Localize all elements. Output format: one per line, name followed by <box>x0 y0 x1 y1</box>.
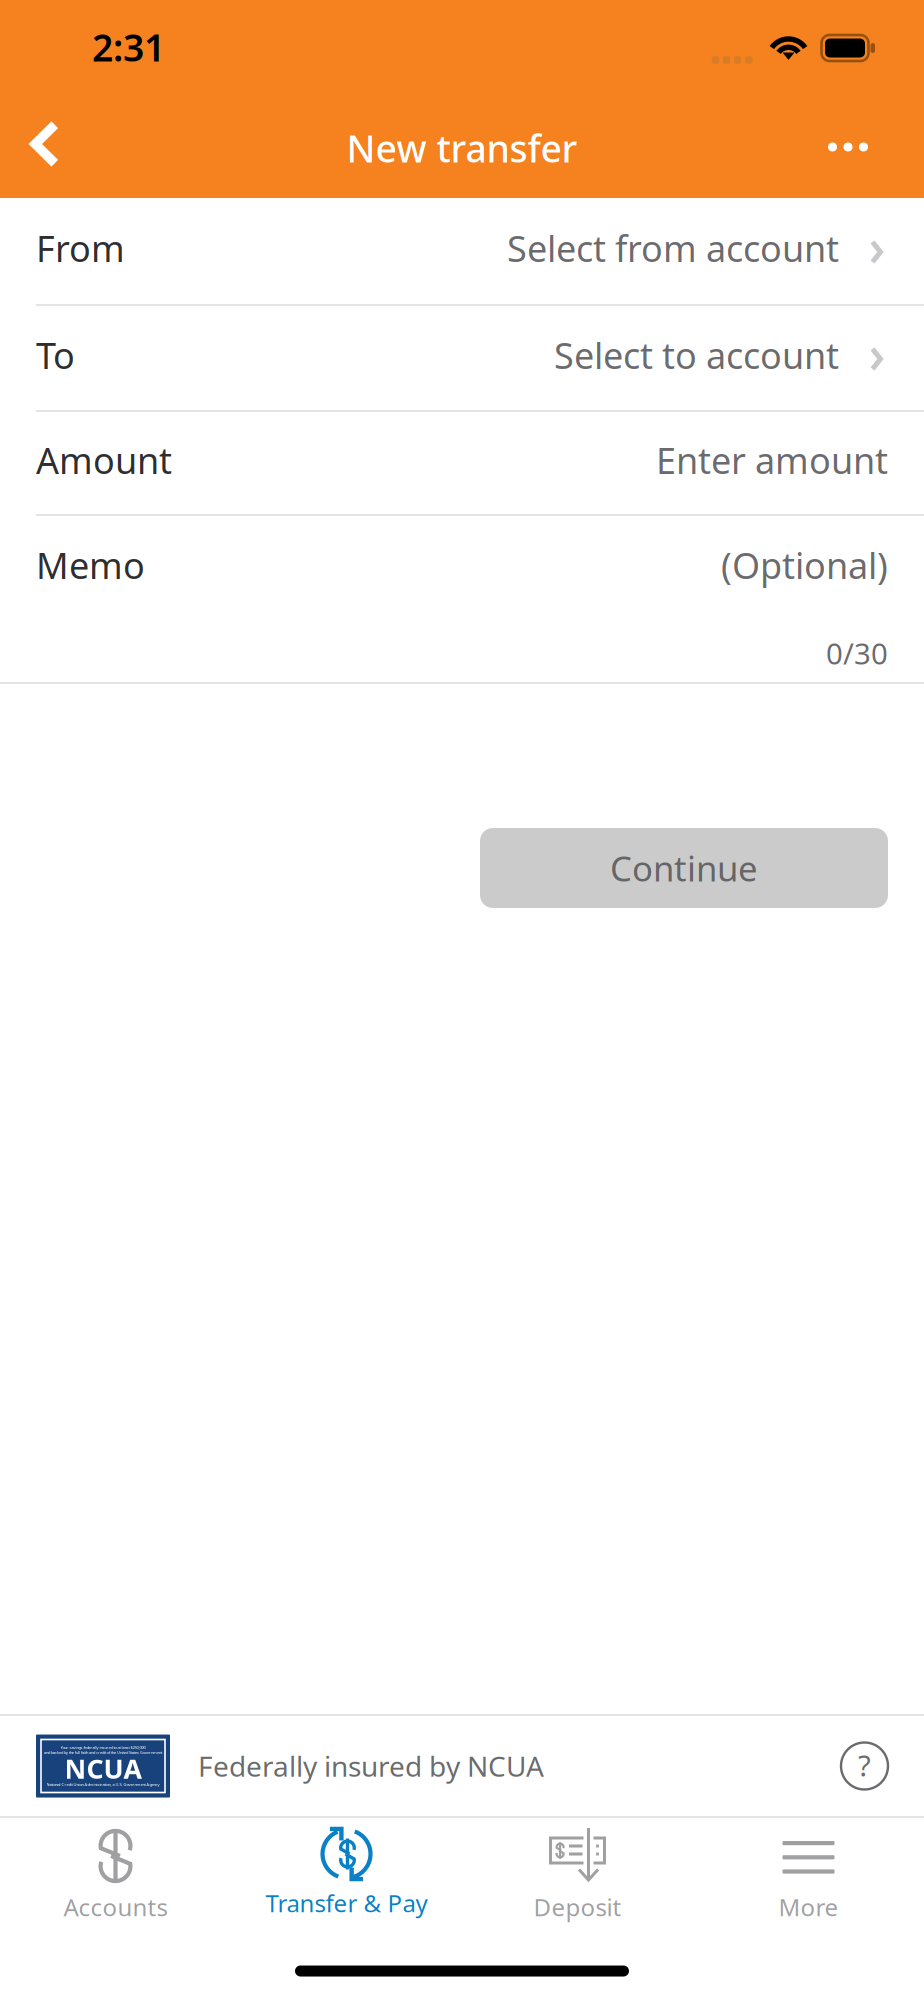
staticText: ? <box>858 1745 871 1784</box>
button[interactable]: Memo <box>0 516 924 684</box>
staticText: To <box>36 331 75 379</box>
staticText: From <box>36 224 125 272</box>
button[interactable]: More <box>693 1818 924 1942</box>
button[interactable]: Amount <box>0 412 924 516</box>
button[interactable]: Deposit <box>462 1818 693 1942</box>
button[interactable]: Transfer & Pay <box>231 1818 462 1942</box>
staticText: Federally insured by NCUA <box>198 1747 544 1785</box>
staticText: Your savings federally insured to at lea… <box>60 1745 145 1750</box>
staticText: 2:31 <box>92 22 165 72</box>
staticText: National Credit Union Administration, a … <box>46 1782 159 1787</box>
staticText: Memo <box>36 541 145 589</box>
staticText: Enter amount <box>656 436 888 484</box>
staticText: Select to account <box>554 331 839 379</box>
button[interactable]: Back <box>13 98 77 190</box>
staticText: 0/30 <box>826 633 888 672</box>
staticText: (Optional) <box>721 541 888 589</box>
staticText: Amount <box>36 436 172 484</box>
button[interactable]: Help <box>841 1742 888 1789</box>
staticText: and backed by the full faith and credit … <box>44 1750 162 1755</box>
staticText: New transfer <box>346 123 577 173</box>
button[interactable]: Accounts <box>0 1818 231 1942</box>
staticText: More <box>778 1891 838 1923</box>
staticText: Continue <box>610 845 758 891</box>
button[interactable]: From <box>0 198 924 306</box>
staticText: Select from account <box>507 224 839 272</box>
button[interactable]: Continue <box>480 828 888 908</box>
staticText: Accounts <box>63 1891 167 1923</box>
staticText: NCUA <box>64 1751 141 1786</box>
button[interactable]: More options <box>807 98 889 190</box>
staticText: Deposit <box>533 1891 621 1923</box>
button[interactable]: To <box>0 306 924 412</box>
staticText: Transfer & Pay <box>265 1887 427 1919</box>
